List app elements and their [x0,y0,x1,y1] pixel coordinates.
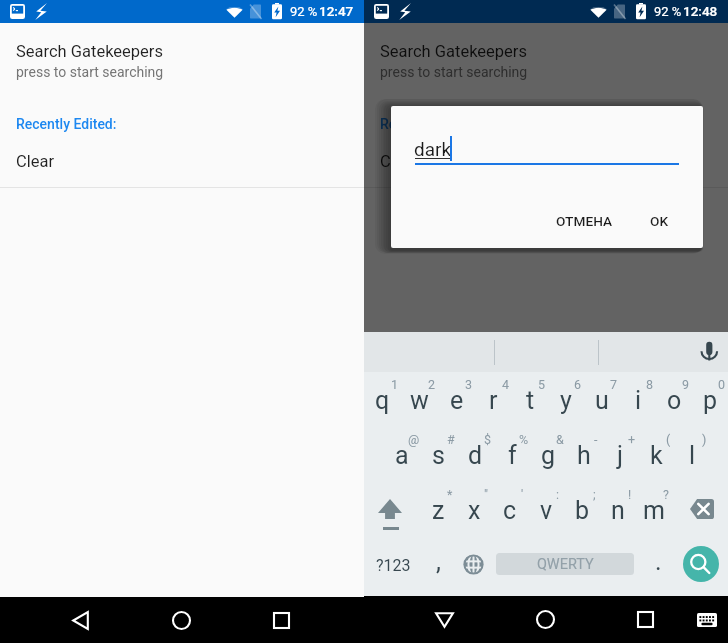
button[interactable]: : [528,483,564,538]
staticText: 0 [718,377,726,392]
staticText: press to start searching [16,64,164,80]
button[interactable]: 4 [475,373,512,428]
staticText: dark [414,138,452,160]
staticText: * [447,487,453,502]
staticText: ) [702,432,707,447]
button[interactable]: ?123 [364,538,420,593]
button[interactable]: 1 [364,373,401,428]
button[interactable]: OK [634,197,685,245]
button[interactable]: Search Gatekeepers [380,42,527,61]
staticText: 7 [610,377,618,392]
staticText: o [667,386,682,415]
button[interactable]: Back [416,596,472,642]
staticText: " [484,487,489,502]
staticText: b [575,496,590,525]
button[interactable]: Recently Edited: [380,116,481,132]
button[interactable]: & [530,428,566,483]
staticText: & [556,432,564,447]
staticText: c [503,496,517,525]
button[interactable]: ОТМЕНА [540,197,629,245]
button[interactable]: $ [457,428,494,483]
staticText: e [450,386,464,415]
button[interactable]: - [566,428,602,483]
button[interactable]: Recent apps [617,596,673,642]
button[interactable]: Recently Edited: [16,116,117,132]
button[interactable]: Change keyboard language [456,538,492,593]
staticText: a [395,441,409,470]
button[interactable]: ? [636,483,672,538]
staticText: g [541,441,556,470]
button[interactable]: , [420,538,456,593]
staticText: 1 [391,377,399,392]
button[interactable]: . [640,538,676,593]
staticText: - [594,432,598,447]
button[interactable]: ) [674,428,710,483]
button[interactable]: 7 [584,373,620,428]
staticText: ; [593,487,596,502]
button[interactable]: 0 [692,373,728,428]
staticText: 92 % [654,4,682,19]
staticText: w [410,386,429,415]
staticText: 6 [574,377,582,392]
staticText: 92 % [290,4,318,19]
button[interactable]: % [494,428,530,483]
staticText: j [617,441,623,470]
button[interactable]: Shift [364,483,420,538]
button[interactable]: Back [52,597,108,643]
button[interactable]: ( [638,428,674,483]
button[interactable]: 2 [401,373,438,428]
staticText: + [628,432,636,447]
button[interactable]: Home [153,597,209,643]
button[interactable]: # [420,428,457,483]
staticText: 4 [502,377,510,392]
button[interactable]: ; [564,483,600,538]
staticText: ' [521,487,524,502]
staticText: , [436,547,441,576]
button[interactable]: 8 [620,373,656,428]
button[interactable]: 6 [548,373,584,428]
staticText: QWERTY [537,556,594,573]
staticText: ОТМЕНА [556,213,613,229]
staticText: i [635,386,642,415]
button[interactable]: Search [683,546,719,582]
staticText: ( [666,432,671,447]
staticText: ! [628,487,632,502]
staticText: 3 [465,377,473,392]
button[interactable]: Backspace [672,483,728,538]
button[interactable]: 5 [512,373,548,428]
button[interactable]: 9 [656,373,692,428]
staticText: y [560,386,572,415]
button[interactable]: + [602,428,638,483]
staticText: 9 [682,377,690,392]
staticText: h [577,441,591,470]
staticText: t [526,386,535,415]
staticText: f [508,441,517,470]
staticText: 8 [646,377,654,392]
button[interactable]: QWERTY [496,553,634,575]
staticText: m [643,496,665,525]
staticText: s [432,441,445,470]
staticText: d [468,441,483,470]
staticText: ?123 [376,556,411,575]
button[interactable]: ' [492,483,528,538]
staticText: 5 [538,377,546,392]
button[interactable]: Recent apps [253,597,309,643]
button[interactable]: Clear [380,152,419,171]
button[interactable]: Voice input [697,339,721,363]
staticText: p [703,386,718,415]
button[interactable]: Home [517,596,573,642]
button[interactable]: Search Gatekeepers [16,42,163,61]
button[interactable]: @ [383,428,420,483]
button[interactable]: Switch input method [687,596,727,642]
staticText: v [540,496,553,525]
staticText: n [611,496,625,525]
button[interactable]: " [456,483,492,538]
staticText: z [432,496,445,525]
button[interactable]: Clear [16,152,55,171]
button[interactable]: * [420,483,456,538]
staticText: . [655,547,662,576]
staticText: 2 [428,377,436,392]
staticText: OK [650,213,669,229]
button[interactable]: 3 [438,373,475,428]
button[interactable]: ! [600,483,636,538]
